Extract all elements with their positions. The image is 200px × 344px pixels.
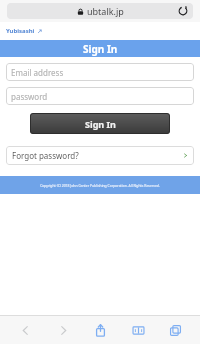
button[interactable]: Email address [6,63,194,81]
staticText: Forgot password? [12,150,79,161]
staticText: Sign In [83,42,118,56]
staticText: Yubisashi [6,27,35,35]
button[interactable]: Sign In [30,113,170,134]
button[interactable]: Reload [175,3,191,19]
button[interactable]: password [6,87,194,105]
button[interactable]: Share [87,317,113,343]
button[interactable]: Tabs [162,317,188,343]
staticText: password [11,91,48,102]
staticText: ubtalk.jp [87,5,124,17]
button[interactable]: Back [12,317,38,343]
staticText: Copyright (C) 2018 John Center Publishin… [40,183,160,188]
button[interactable]: Forgot password? [6,146,194,165]
button[interactable]: Forward [50,317,76,343]
staticText: Email address [11,67,64,78]
staticText: Sign In [85,118,116,130]
button[interactable]: Bookmarks [125,317,151,343]
button[interactable]: ubtalk.jp [7,3,193,19]
